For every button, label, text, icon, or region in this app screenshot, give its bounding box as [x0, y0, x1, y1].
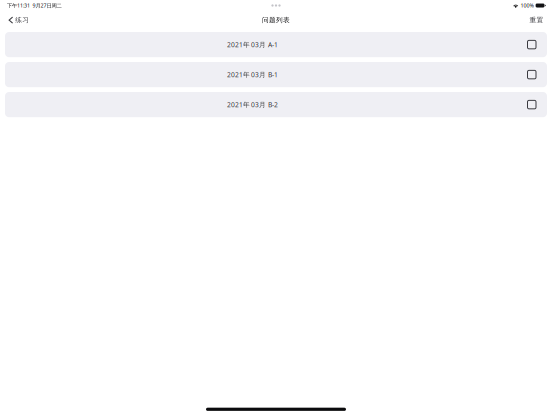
- staticText: 9月27日周二: [33, 2, 62, 9]
- staticText: 问题列表: [262, 16, 290, 24]
- button[interactable]: 练习: [1, 11, 36, 29]
- button[interactable]: 重置: [521, 11, 551, 29]
- staticText: 2021年 03月 A-1: [227, 40, 278, 49]
- button[interactable]: Multitasking Controls: [259, 0, 293, 11]
- staticText: 100%: [521, 2, 534, 9]
- staticText: 下午11:31: [7, 2, 30, 9]
- staticText: 练习: [15, 16, 29, 24]
- button[interactable]: 2021年 03月 B-2: [5, 92, 547, 117]
- staticText: 重置: [529, 16, 543, 24]
- staticText: 2021年 03月 B-2: [227, 100, 278, 109]
- button[interactable]: 2021年 03月 A-1: [5, 32, 547, 57]
- button[interactable]: 2021年 03月 B-1: [5, 62, 547, 87]
- staticText: 2021年 03月 B-1: [227, 70, 278, 79]
